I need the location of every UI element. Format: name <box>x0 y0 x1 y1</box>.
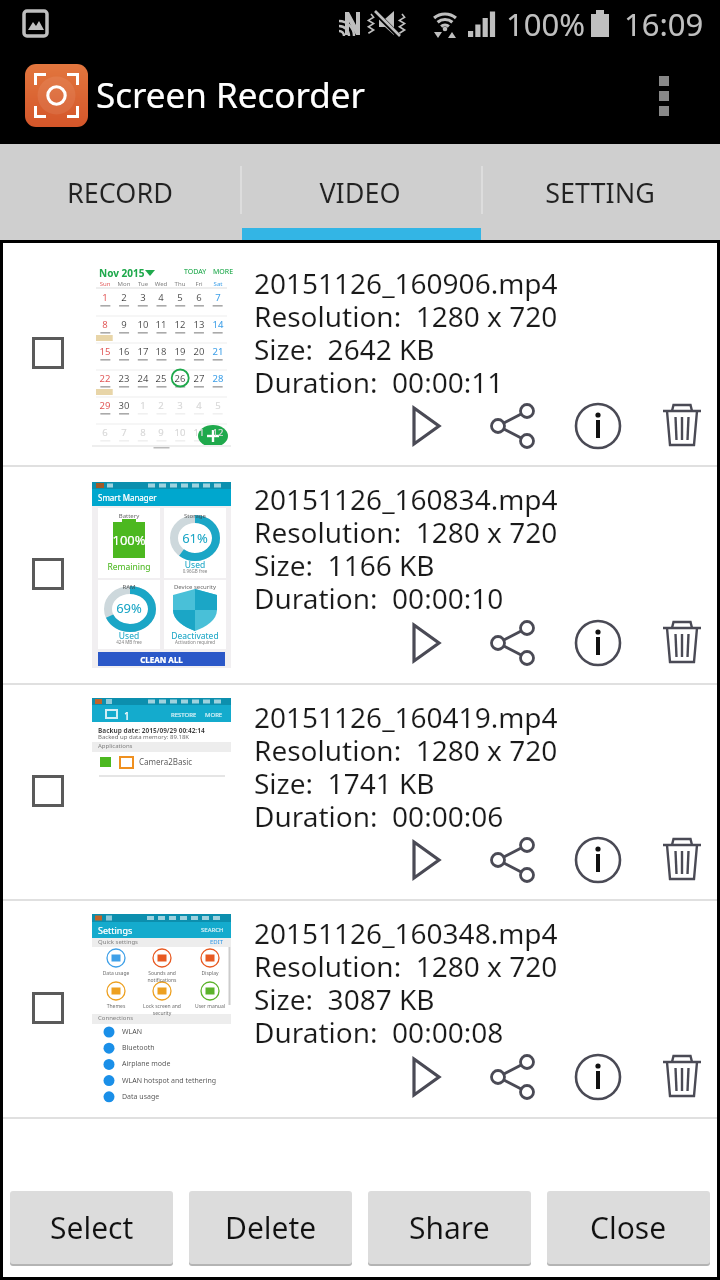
staticText: 424 MB free <box>98 639 160 645</box>
staticText: Camera2Basic <box>139 756 193 767</box>
staticText: WLAN <box>122 1027 142 1037</box>
button[interactable]: Info <box>571 1051 623 1103</box>
button[interactable]: Select video <box>3 685 717 899</box>
button[interactable]: Delete <box>656 617 708 669</box>
staticText: Smart Manager <box>98 492 157 503</box>
staticText: 30 <box>112 399 136 412</box>
staticText: Activation required <box>164 639 226 645</box>
button[interactable]: Close <box>547 1191 710 1264</box>
staticText: 5 <box>168 291 192 304</box>
button[interactable]: Info <box>571 400 623 452</box>
staticText: Bluetooth <box>122 1043 155 1053</box>
staticText: 100% <box>98 531 160 549</box>
staticText: 15 <box>93 345 117 358</box>
staticText: SEARCH <box>201 926 224 934</box>
button[interactable]: Delete <box>656 1051 708 1103</box>
staticText: 12 <box>206 426 230 439</box>
button[interactable]: Select video <box>3 901 717 1117</box>
staticText: 1 <box>124 709 130 723</box>
button[interactable]: SETTING <box>480 144 720 240</box>
staticText: Close <box>590 1207 667 1248</box>
staticText: EDIT <box>210 938 224 946</box>
staticText: 4 <box>187 399 211 412</box>
staticText: Quick settings <box>98 938 138 946</box>
button[interactable]: Share <box>486 400 538 452</box>
staticText: 61% <box>164 529 226 547</box>
button[interactable]: Select video <box>13 539 83 609</box>
staticText: 11 <box>149 318 173 331</box>
staticText: Duration: 00:00:11 <box>254 363 504 401</box>
staticText: 20151126_160419.mp4 <box>254 698 558 736</box>
staticText: 18 <box>149 345 173 358</box>
button[interactable]: More options <box>648 48 720 144</box>
button[interactable]: Select video <box>13 756 83 826</box>
staticText: CLEAN ALL <box>98 654 225 665</box>
button[interactable]: Select video <box>13 973 83 1043</box>
button[interactable]: Info <box>571 834 623 886</box>
staticText: 20151126_160834.mp4 <box>254 480 558 518</box>
staticText: Used <box>98 630 160 642</box>
button[interactable]: Play <box>401 834 453 886</box>
staticText: Airplane mode <box>122 1059 171 1069</box>
staticText: 8 <box>131 426 155 439</box>
staticText: Applications <box>98 742 133 750</box>
staticText: 9 <box>149 426 173 439</box>
staticText: 5 <box>206 399 230 412</box>
staticText: Delete <box>225 1207 317 1248</box>
staticText: User manual <box>186 1003 234 1010</box>
button[interactable]: Select video <box>3 467 717 683</box>
staticText: VIDEO <box>319 174 401 211</box>
staticText: Storage <box>164 512 226 520</box>
staticText: Sounds and notifications <box>138 970 186 984</box>
staticText: 10 <box>168 426 192 439</box>
staticText: Select <box>50 1207 134 1248</box>
staticText: Battery <box>98 512 160 520</box>
button[interactable]: Select video <box>3 243 717 465</box>
staticText: Settings <box>98 924 133 936</box>
staticText: 27 <box>187 372 211 385</box>
staticText: MORE <box>205 711 223 719</box>
button[interactable]: Delete <box>656 834 708 886</box>
staticText: Tue <box>132 280 154 288</box>
staticText: 3 <box>131 291 155 304</box>
staticText: Screen Recorder <box>96 71 365 119</box>
staticText: Duration: 00:00:06 <box>254 797 504 835</box>
staticText: 19 <box>168 345 192 358</box>
staticText: 12 <box>168 318 192 331</box>
staticText: 8 <box>93 318 117 331</box>
staticText: Sat <box>207 280 229 288</box>
button[interactable]: Select <box>10 1191 173 1264</box>
staticText: Duration: 00:00:08 <box>254 1013 504 1051</box>
button[interactable]: Share <box>486 1051 538 1103</box>
staticText: Mon <box>113 280 135 288</box>
staticText: 13 <box>187 318 211 331</box>
staticText: 17 <box>131 345 155 358</box>
button[interactable]: Play <box>401 617 453 669</box>
staticText: 25 <box>149 372 173 385</box>
button[interactable]: Delete <box>656 400 708 452</box>
button[interactable]: Share <box>486 834 538 886</box>
button[interactable]: Share <box>368 1191 531 1264</box>
button[interactable]: Play <box>401 1051 453 1103</box>
button[interactable]: Info <box>571 617 623 669</box>
button[interactable]: Screen Recorder <box>25 64 88 127</box>
button[interactable]: Delete <box>189 1191 352 1264</box>
staticText: 20151126_160906.mp4 <box>254 264 558 302</box>
staticText: 11 <box>187 426 211 439</box>
staticText: Fri <box>188 280 210 288</box>
staticText: Deactivated <box>164 630 226 642</box>
staticText: SETTING <box>545 174 655 211</box>
staticText: 29 <box>93 399 117 412</box>
staticText: Thu <box>169 280 191 288</box>
staticText: 20 <box>187 345 211 358</box>
staticText: Resolution: 1280 x 720 <box>254 513 558 551</box>
button[interactable]: Play <box>401 400 453 452</box>
button[interactable]: VIDEO <box>240 144 480 240</box>
staticText: 4 <box>149 291 173 304</box>
staticText: Data usage <box>122 1092 160 1102</box>
button[interactable]: Select video <box>13 318 83 388</box>
staticText: Share <box>409 1207 490 1248</box>
button[interactable]: RECORD <box>0 144 240 240</box>
button[interactable]: Share <box>486 617 538 669</box>
staticText: Data usage <box>92 970 140 977</box>
